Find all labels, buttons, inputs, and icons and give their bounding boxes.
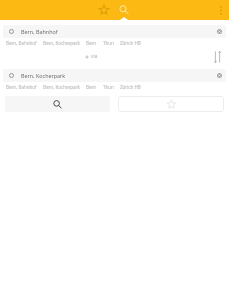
staticText: Bern, Kocherpark <box>21 72 214 79</box>
button[interactable]: Bern <box>83 39 100 47</box>
button[interactable]: Save as favourite <box>118 96 224 112</box>
button[interactable]: Bern <box>83 83 100 91</box>
button[interactable]: via <box>83 51 100 62</box>
staticText: Bern, Bahnhof <box>21 28 214 35</box>
button[interactable]: Favourites tab <box>94 0 114 20</box>
staticText: Bern, Kocherpark <box>43 84 80 90</box>
button[interactable]: Clear <box>214 69 225 82</box>
staticText: Thun <box>103 40 114 46</box>
button[interactable]: Search connections <box>5 96 110 112</box>
button[interactable]: Bern, Bahnhof <box>3 83 40 91</box>
button[interactable]: Thun <box>100 83 117 91</box>
button[interactable]: Bern, Kocherpark <box>3 69 226 82</box>
button[interactable]: Zürich HB <box>117 83 144 91</box>
staticText: Bern, Bahnhof <box>6 84 37 90</box>
button[interactable]: Bern, Kocherpark <box>40 39 83 47</box>
staticText: Thun <box>103 84 114 90</box>
button[interactable]: Thun <box>100 39 117 47</box>
staticText: Bern <box>86 40 97 46</box>
button[interactable]: Search tab <box>114 0 134 20</box>
button[interactable]: Bern, Bahnhof <box>3 39 40 47</box>
button[interactable]: Bern, Kocherpark <box>40 83 83 91</box>
staticText: via <box>91 53 98 60</box>
button[interactable]: Bern, Bahnhof <box>3 25 226 38</box>
button[interactable]: More options <box>215 0 227 20</box>
staticText: Bern <box>86 84 97 90</box>
button[interactable]: Swap departure and destination <box>212 50 222 63</box>
staticText: Bern, Kocherpark <box>43 40 80 46</box>
staticText: Bern, Bahnhof <box>6 40 37 46</box>
button[interactable]: Clear <box>214 25 225 38</box>
staticText: Zürich HB <box>120 40 141 46</box>
staticText: Zürich HB <box>120 84 141 90</box>
button[interactable]: Zürich HB <box>117 39 144 47</box>
